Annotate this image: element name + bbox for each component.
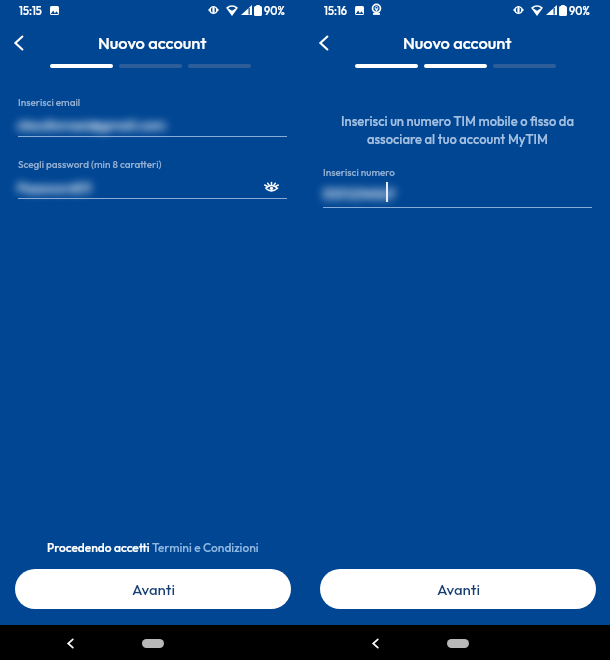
staticText: Avanti xyxy=(437,580,480,599)
button[interactable]: Back xyxy=(363,631,387,655)
button[interactable]: Back xyxy=(58,631,82,655)
staticText: Password01 xyxy=(17,179,92,197)
staticText: 90% xyxy=(569,4,590,18)
staticText: Inserisci un numero TIM mobile o fisso d… xyxy=(332,113,583,148)
staticText: 90% xyxy=(264,4,285,18)
button[interactable]: Back xyxy=(311,30,337,56)
button[interactable]: Avanti xyxy=(15,569,291,609)
staticText: 3331234567 xyxy=(322,185,396,203)
staticText: Inserisci email xyxy=(18,96,81,109)
button[interactable]: Home xyxy=(142,639,164,648)
staticText: Scegli password (min 8 caratteri) xyxy=(18,158,162,171)
staticText: claudiorossi@gmail.com xyxy=(17,116,166,134)
staticText: Avanti xyxy=(132,580,175,599)
staticText: Procedendo accetti xyxy=(47,540,152,555)
button[interactable]: Show password xyxy=(264,180,278,193)
staticText: Nuovo account xyxy=(98,32,207,53)
staticText: Inserisci numero xyxy=(323,166,395,179)
staticText: Nuovo account xyxy=(403,32,512,53)
button[interactable]: Termini e Condizioni xyxy=(152,540,259,555)
button[interactable]: Home xyxy=(447,639,469,648)
button[interactable]: Avanti xyxy=(320,569,596,609)
staticText: 15:16 xyxy=(324,4,347,18)
staticText: 15:15 xyxy=(19,4,42,18)
button[interactable]: Back xyxy=(6,30,32,56)
